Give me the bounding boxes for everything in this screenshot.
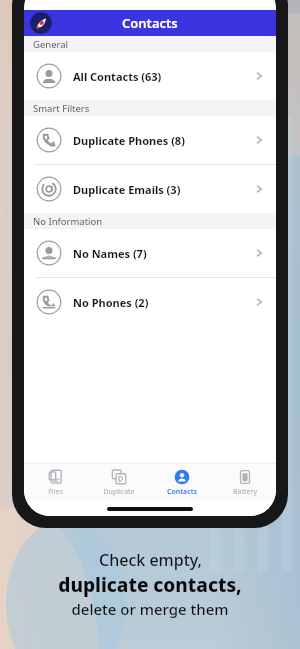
- staticText: Duplicate Phones (8): [73, 133, 185, 148]
- staticText: Smart Filters: [33, 102, 90, 115]
- staticText: delete or merge them: [71, 599, 229, 619]
- staticText: duplicate contacts,: [58, 572, 242, 598]
- button[interactable]: Files: [24, 464, 87, 502]
- button[interactable]: Battery: [213, 464, 276, 502]
- button[interactable]: Contacts: [150, 464, 213, 502]
- staticText: Check empty,: [99, 549, 202, 571]
- button[interactable]: Duplicate Emails (3): [24, 165, 276, 213]
- staticText: General: [33, 38, 69, 51]
- staticText: No Information: [33, 215, 103, 228]
- button[interactable]: Duplicate: [87, 464, 150, 502]
- button[interactable]: No Names (7): [24, 229, 276, 277]
- staticText: No Names (7): [73, 246, 147, 261]
- button[interactable]: No Phones (2): [24, 278, 276, 326]
- staticText: Files: [48, 487, 63, 497]
- staticText: Contacts: [122, 14, 178, 32]
- button[interactable]: All Contacts (63): [24, 52, 276, 100]
- staticText: All Contacts (63): [73, 69, 162, 84]
- staticText: No Phones (2): [73, 295, 149, 310]
- staticText: Duplicate Emails (3): [73, 182, 181, 197]
- button[interactable]: Duplicate Phones (8): [24, 116, 276, 164]
- button[interactable]: App menu: [30, 12, 52, 34]
- staticText: Contacts: [167, 487, 197, 497]
- staticText: Battery: [233, 487, 257, 497]
- staticText: Duplicate: [103, 487, 135, 497]
